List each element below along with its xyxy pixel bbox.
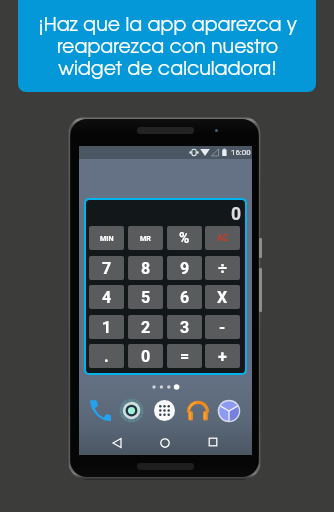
button[interactable]: 8 [128, 256, 163, 280]
staticText: 8 [141, 259, 151, 278]
button[interactable]: MR [128, 226, 163, 250]
staticText: 5 [141, 288, 151, 307]
staticText: 0 [141, 347, 151, 366]
button[interactable]: 9 [167, 256, 202, 280]
button[interactable]: Back [112, 438, 122, 448]
staticText: 6 [180, 288, 190, 307]
button[interactable]: Recents [208, 437, 218, 447]
button[interactable]: . [89, 344, 124, 368]
button[interactable]: Settings [119, 398, 144, 423]
button[interactable]: 1 [89, 315, 124, 339]
staticText: - [219, 318, 226, 337]
button[interactable]: 4 [89, 285, 124, 309]
button[interactable]: 7 [89, 256, 124, 280]
button[interactable]: % [167, 226, 202, 250]
button[interactable]: X [205, 285, 240, 309]
button[interactable]: 0 [128, 344, 163, 368]
button[interactable]: MIN [89, 226, 124, 250]
button[interactable]: ¡Haz que la app aparezca y reaparezca co… [18, 0, 316, 92]
button[interactable]: - [205, 315, 240, 339]
staticText: . [104, 347, 109, 366]
staticText: X [217, 288, 228, 307]
staticText: 0 [231, 204, 242, 225]
button[interactable]: Clock [217, 399, 241, 423]
staticText: 3 [180, 318, 190, 337]
button[interactable]: 5 [128, 285, 163, 309]
button[interactable]: Apps [154, 400, 175, 421]
staticText: MR [140, 234, 151, 242]
staticText: 2 [141, 318, 151, 337]
staticText: 4 [102, 288, 112, 307]
button[interactable]: 3 [167, 315, 202, 339]
button[interactable]: = [167, 344, 202, 368]
staticText: MIN [100, 234, 114, 242]
button[interactable]: ÷ [205, 256, 240, 280]
staticText: 9 [180, 259, 190, 278]
staticText: 16:00 [231, 148, 251, 157]
button[interactable]: + [205, 344, 240, 368]
staticText: + [218, 347, 227, 366]
button[interactable]: AC [205, 226, 240, 250]
staticText: % [179, 230, 190, 246]
button[interactable]: Music [186, 399, 210, 423]
button[interactable]: Phone [89, 399, 112, 422]
staticText: 7 [102, 259, 112, 278]
button[interactable]: 2 [128, 315, 163, 339]
staticText: ÷ [218, 259, 228, 278]
staticText: = [180, 347, 190, 366]
button[interactable]: Home [160, 438, 170, 448]
button[interactable]: 6 [167, 285, 202, 309]
staticText: AC [217, 233, 229, 243]
staticText: 1 [102, 318, 112, 337]
staticText: ¡Haz que la app aparezca y reaparezca co… [38, 17, 297, 79]
